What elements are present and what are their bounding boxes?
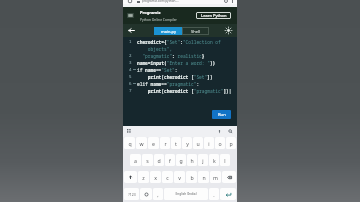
button[interactable]: Run	[212, 110, 231, 119]
button[interactable]: Voice input	[217, 129, 222, 134]
button[interactable]: Enter	[220, 188, 236, 200]
staticText: b	[190, 174, 194, 181]
staticText: l	[224, 157, 226, 164]
staticText: s	[146, 157, 149, 164]
button[interactable]: u	[193, 137, 203, 149]
staticText: 6	[129, 81, 132, 87]
staticText: print(cherodict ["pragmatic"])|	[137, 88, 232, 94]
staticText: e	[152, 140, 155, 147]
staticText: ,	[157, 191, 159, 198]
button[interactable]: s	[142, 154, 153, 166]
staticText: ?123	[128, 192, 136, 197]
staticText: m	[213, 174, 218, 181]
button[interactable]: l	[220, 154, 230, 166]
staticText: d	[157, 157, 161, 164]
staticText: Shell	[191, 29, 200, 34]
button[interactable]: Backspace	[222, 171, 236, 183]
button[interactable]: Emoji	[140, 188, 152, 200]
button[interactable]: z	[138, 171, 149, 183]
button[interactable]: o	[215, 137, 225, 149]
button[interactable]: v	[174, 171, 185, 183]
staticText: h	[190, 157, 194, 164]
button[interactable]: f	[165, 154, 175, 166]
button[interactable]: programiz.com/python-...	[142, 0, 224, 3]
button[interactable]: ?123	[124, 188, 139, 200]
button[interactable]: English (India)	[164, 188, 208, 200]
button[interactable]: q	[124, 137, 135, 149]
staticText: programiz.com/python-...	[142, 0, 179, 3]
staticText: q	[128, 140, 132, 147]
staticText: j	[202, 157, 204, 164]
staticText: c	[166, 174, 169, 181]
staticText: "pragmatic": realistic}	[137, 53, 205, 59]
button[interactable]: i	[204, 137, 214, 149]
button[interactable]: Shift	[124, 171, 137, 183]
button[interactable]: w	[136, 137, 147, 149]
button[interactable]: Clipboard	[127, 129, 132, 134]
staticText: t	[175, 140, 177, 147]
button[interactable]: y	[182, 137, 192, 149]
staticText: print(cherodict ["Set"])	[137, 74, 213, 80]
button[interactable]: Site info	[137, 0, 140, 3]
staticText: f	[169, 157, 171, 164]
staticText: r	[164, 140, 167, 147]
staticText: v	[178, 174, 181, 181]
staticText: o	[218, 140, 222, 147]
button[interactable]: Search	[228, 129, 233, 134]
button[interactable]: e	[148, 137, 159, 149]
button[interactable]: ,	[153, 188, 163, 200]
staticText: elif name=="pragmatic":	[137, 81, 200, 87]
staticText: y	[186, 140, 189, 147]
button[interactable]: main.py	[154, 27, 182, 35]
button[interactable]: a	[130, 154, 141, 166]
staticText: 3	[129, 60, 132, 66]
button[interactable]: p	[226, 137, 236, 149]
button[interactable]: Account	[224, 0, 228, 3]
staticText: p	[229, 140, 233, 147]
staticText: if name=="Set":	[137, 67, 178, 73]
staticText: Python Online Compiler	[140, 17, 177, 21]
button[interactable]: Menu	[127, 13, 134, 18]
button[interactable]: h	[187, 154, 197, 166]
staticText: 7	[129, 88, 132, 94]
staticText: Run	[218, 112, 226, 118]
button[interactable]: j	[198, 154, 208, 166]
button[interactable]: k	[209, 154, 219, 166]
button[interactable]: g	[176, 154, 186, 166]
button[interactable]: r	[160, 137, 170, 149]
button[interactable]: x	[150, 171, 161, 183]
staticText: g	[179, 157, 183, 164]
staticText: English (India)	[175, 192, 197, 196]
button[interactable]: b	[186, 171, 197, 183]
staticText: 5	[129, 74, 132, 80]
staticText: cherodict={"Set":"Collection of	[137, 39, 221, 45]
button[interactable]: More options	[231, 0, 234, 3]
staticText: x	[154, 174, 157, 181]
staticText: 1	[129, 39, 132, 45]
staticText: a	[134, 157, 137, 164]
button[interactable]: d	[154, 154, 164, 166]
button[interactable]: m	[210, 171, 221, 183]
button[interactable]: Shell	[182, 27, 209, 35]
button[interactable]: Learn Python	[196, 12, 231, 19]
staticText: main.py	[161, 29, 176, 34]
button[interactable]: Tabs	[128, 0, 132, 3]
staticText: .	[213, 191, 215, 198]
button[interactable]: n	[198, 171, 209, 183]
staticText: 2	[129, 53, 132, 59]
button[interactable]: c	[162, 171, 173, 183]
staticText: 4	[129, 67, 132, 73]
button[interactable]: t	[171, 137, 181, 149]
staticText: z	[142, 174, 145, 181]
staticText: w	[139, 140, 144, 147]
staticText: Programiz	[140, 10, 161, 15]
staticText: Learn Python	[201, 13, 227, 18]
staticText: name=input("Enter a word: "))	[137, 60, 216, 66]
button[interactable]: Theme	[224, 26, 233, 35]
staticText: k	[213, 157, 216, 164]
staticText: objects",	[137, 46, 173, 52]
staticText: u	[196, 140, 200, 147]
button[interactable]: .	[209, 188, 219, 200]
staticText: i	[208, 140, 210, 147]
button[interactable]: Back	[127, 26, 136, 35]
